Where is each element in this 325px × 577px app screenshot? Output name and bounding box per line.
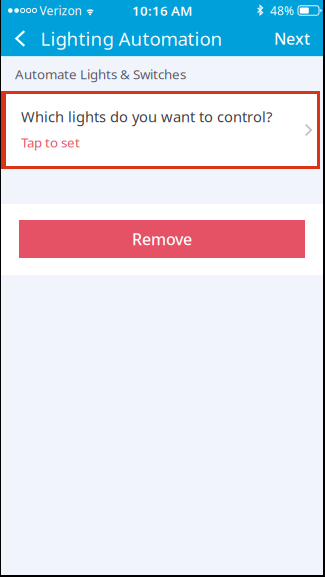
button[interactable]: Remove [1, 204, 323, 275]
staticText: Next [274, 28, 310, 49]
button[interactable]: Which lights do you want to control? [1, 91, 323, 169]
staticText: Automate Lights & Switches [15, 65, 186, 83]
staticText: Which lights do you want to control? [21, 107, 272, 126]
staticText: Verizon [40, 2, 82, 18]
button[interactable]: Back [1, 21, 41, 56]
staticText: Remove [132, 228, 192, 250]
button[interactable]: Next [262, 21, 323, 56]
staticText: 10:16 AM [132, 2, 192, 19]
staticText: Tap to set [21, 133, 80, 151]
staticText: Lighting Automation [41, 26, 223, 51]
staticText: 48% [270, 2, 294, 18]
